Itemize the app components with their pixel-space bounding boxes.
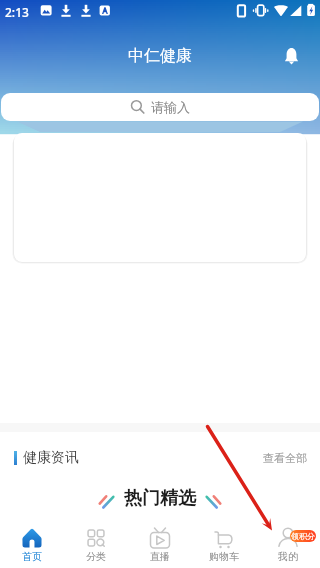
staticText: 健康资讯 [23,449,79,467]
staticText: 我的 [278,550,298,563]
button[interactable]: 请输入 [1,93,319,121]
staticText: 查看全部 [263,451,307,465]
button[interactable]: 我的 [256,518,320,568]
staticText: 直播 [150,550,170,563]
button[interactable]: 分类 [64,518,128,568]
staticText: 热门精选 [124,487,196,510]
button[interactable]: 首页 [0,518,64,568]
button[interactable]: Notifications [280,45,303,68]
staticText: 首页 [22,550,42,563]
staticText: 请输入 [151,99,190,115]
staticText: 2:13 [5,4,29,20]
button[interactable]: 领积分 [290,530,316,542]
button[interactable]: 健康资讯 [14,441,307,475]
staticText: 分类 [86,550,106,563]
staticText: 领积分 [291,531,315,541]
button[interactable]: 购物车 [192,518,256,568]
staticText: 购物车 [209,550,239,563]
staticText: 中仁健康 [128,46,192,66]
button[interactable]: 直播 [128,518,192,568]
